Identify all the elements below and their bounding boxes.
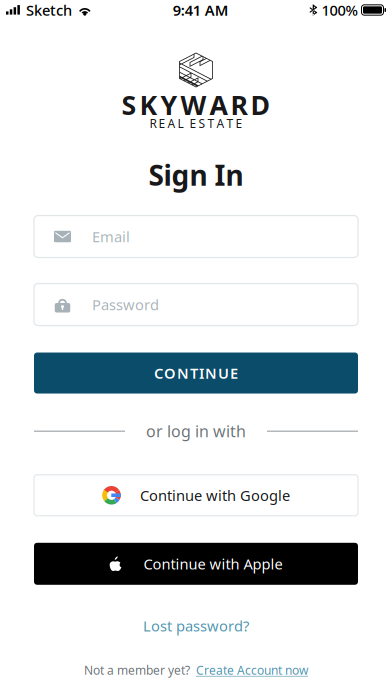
staticText: or log in with [146, 420, 246, 442]
staticText: Lost password? [143, 616, 249, 635]
staticText: R E A L E S T A T E [149, 115, 242, 131]
staticText: Sketch [26, 0, 72, 20]
staticText: Sign In [148, 156, 243, 193]
button[interactable]: Continue with Google [34, 475, 358, 516]
button[interactable]: Create Account now [190, 662, 308, 678]
staticText: Continue with Google [140, 485, 290, 505]
staticText: Create Account now [196, 662, 308, 678]
button[interactable]: Lost password? [34, 617, 358, 635]
staticText: S K Y W A R D [121, 87, 270, 122]
button[interactable]: Continue with Apple [34, 543, 358, 585]
staticText: Email [92, 227, 130, 246]
staticText: 100% [321, 0, 357, 20]
button[interactable]: C O N T I N U E [34, 352, 358, 393]
staticText: Continue with Apple [143, 554, 282, 573]
staticText: 9:41 AM [173, 0, 229, 20]
staticText: Not a member yet? [84, 662, 190, 678]
staticText: Password [92, 295, 159, 314]
staticText: C O N T I N U E [154, 363, 238, 383]
